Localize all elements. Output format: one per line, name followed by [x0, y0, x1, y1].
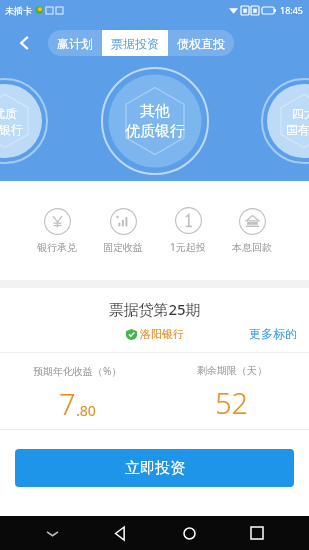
staticText: 更多标的	[249, 326, 297, 341]
staticText: 预期年化收益（%）	[33, 364, 122, 378]
staticText: 票据贷第25期	[0, 299, 309, 319]
staticText: 四大	[292, 106, 309, 121]
staticText: 剩余期限（天）	[197, 364, 267, 377]
button[interactable]: 债权直投	[168, 30, 234, 56]
staticText: 债权直投	[177, 36, 225, 51]
staticText: 洛阳银行	[140, 327, 184, 341]
staticText: 银行承兑	[37, 241, 77, 254]
button[interactable]: Hide	[35, 516, 69, 550]
button[interactable]: Back	[103, 516, 137, 550]
staticText: 本息回款	[232, 241, 272, 254]
button[interactable]: Home	[172, 516, 206, 550]
staticText: 业银行	[0, 122, 23, 137]
staticText: 未插卡	[5, 5, 32, 16]
button[interactable]: 票据投资	[102, 30, 168, 56]
staticText: 固定收益	[103, 241, 143, 254]
staticText: 52	[215, 383, 249, 422]
staticText: 优质银行	[125, 122, 185, 141]
button[interactable]: 固定收益	[103, 208, 143, 254]
button[interactable]: 1元起投	[170, 207, 206, 254]
button[interactable]: 立即投资	[15, 449, 294, 487]
button[interactable]: 赢计划	[48, 30, 102, 56]
staticText: 赢计划	[57, 36, 93, 51]
button[interactable]: 本息回款	[232, 208, 272, 254]
staticText: 18:45	[280, 4, 304, 16]
staticText: 7	[59, 384, 76, 423]
staticText: .80	[76, 401, 96, 420]
staticText: 其他	[140, 102, 170, 121]
staticText: 1元起投	[170, 240, 206, 254]
button[interactable]: 银行承兑	[37, 208, 77, 254]
staticText: 国有银	[286, 122, 309, 137]
button[interactable]: Back	[6, 24, 44, 62]
button[interactable]: 更多标的	[249, 326, 297, 341]
button[interactable]: Recents	[240, 516, 274, 550]
staticText: 票据投资	[111, 36, 159, 51]
staticText: 立即投资	[125, 459, 185, 478]
staticText: 优质	[0, 106, 17, 121]
